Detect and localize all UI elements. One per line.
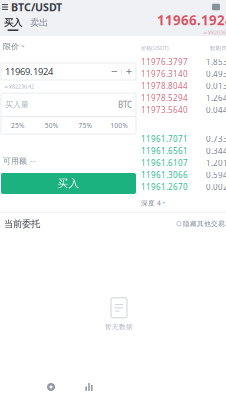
- staticText: 11961.6107: [141, 158, 188, 168]
- button[interactable]: 11978.8044: [141, 80, 226, 92]
- staticText: --: [30, 156, 36, 166]
- staticText: 11961.7071: [141, 134, 188, 144]
- staticText: 11969.1924: [5, 65, 53, 78]
- staticText: 11966.1924: [157, 11, 226, 29]
- staticText: BTC: [118, 99, 132, 110]
- staticText: 11978.8044: [141, 81, 188, 91]
- button[interactable]: 买入: [0, 14, 26, 36]
- staticText: BTC/USDT: [11, 0, 62, 14]
- button[interactable]: 11961.3066: [141, 169, 226, 181]
- staticText: 买入: [4, 17, 22, 28]
- staticText: ≈ ¥82236.42: [4, 83, 34, 90]
- button[interactable]: 11976.3797: [141, 56, 226, 68]
- staticText: 11961.3066: [141, 170, 188, 180]
- staticText: 1.2640: [206, 93, 226, 103]
- button[interactable]: 11961.7071: [141, 133, 226, 145]
- staticText: 价格(USDT): [141, 44, 169, 52]
- button[interactable]: Markets: [70, 376, 108, 398]
- button[interactable]: 11961.2670: [141, 181, 226, 193]
- button[interactable]: 11976.3140: [141, 68, 226, 80]
- button[interactable]: 100%: [102, 117, 136, 134]
- staticText: 数量(BTC): [210, 44, 226, 52]
- button[interactable]: 75%: [68, 117, 102, 134]
- staticText: 25%: [11, 121, 25, 130]
- staticText: 50%: [45, 121, 59, 130]
- staticText: 11961.6561: [141, 146, 188, 156]
- button[interactable]: 卖出: [26, 14, 52, 36]
- staticText: 0.0135: [206, 81, 226, 91]
- button[interactable]: 11978.5294: [141, 92, 226, 104]
- button[interactable]: Settings: [32, 376, 70, 398]
- staticText: 买入量: [5, 100, 29, 110]
- staticText: 0.0024: [206, 182, 226, 192]
- staticText: 限价: [3, 42, 19, 51]
- button[interactable]: 买入: [1, 173, 136, 194]
- button[interactable]: 限价: [1, 40, 25, 53]
- staticText: 可用额: [3, 156, 27, 166]
- button[interactable]: 深度 4: [141, 197, 165, 209]
- button[interactable]: Chart: [209, 1, 223, 13]
- staticText: 1.8534: [206, 57, 226, 67]
- button[interactable]: Increase price: [122, 64, 136, 79]
- staticText: 11976.3140: [141, 69, 188, 79]
- button[interactable]: Decrease price: [107, 64, 121, 79]
- staticText: 深度 4: [141, 199, 161, 207]
- staticText: 0.7332: [206, 134, 226, 144]
- staticText: ≈ ¥82036.81: [203, 29, 226, 36]
- staticText: 隐藏其他交易对: [183, 220, 226, 228]
- staticText: 11973.5640: [141, 105, 188, 115]
- staticText: 暂无数据: [105, 323, 133, 331]
- button[interactable]: 11973.5640: [141, 104, 226, 116]
- button[interactable]: 11961.6561: [141, 145, 226, 157]
- button[interactable]: BTC/USDT market: [0, 1, 66, 13]
- button[interactable]: 隐藏其他交易对: [177, 218, 226, 230]
- button[interactable]: 11961.6107: [141, 157, 226, 169]
- staticText: 100%: [110, 121, 128, 130]
- staticText: 当前委托: [4, 218, 40, 230]
- staticText: 卖出: [30, 17, 48, 28]
- staticText: 0.3444: [206, 146, 226, 156]
- staticText: 0.5942: [206, 170, 226, 180]
- staticText: 买入: [57, 177, 79, 190]
- button[interactable]: 25%: [1, 117, 35, 134]
- staticText: 1.2016: [206, 158, 226, 168]
- button[interactable]: 50%: [35, 117, 69, 134]
- staticText: 11976.3797: [141, 57, 188, 67]
- staticText: 11978.5294: [141, 93, 188, 103]
- staticText: 11961.2670: [141, 182, 188, 192]
- staticText: 75%: [78, 121, 92, 130]
- staticText: 0.0445: [206, 105, 226, 115]
- staticText: 0.4937: [206, 69, 226, 79]
